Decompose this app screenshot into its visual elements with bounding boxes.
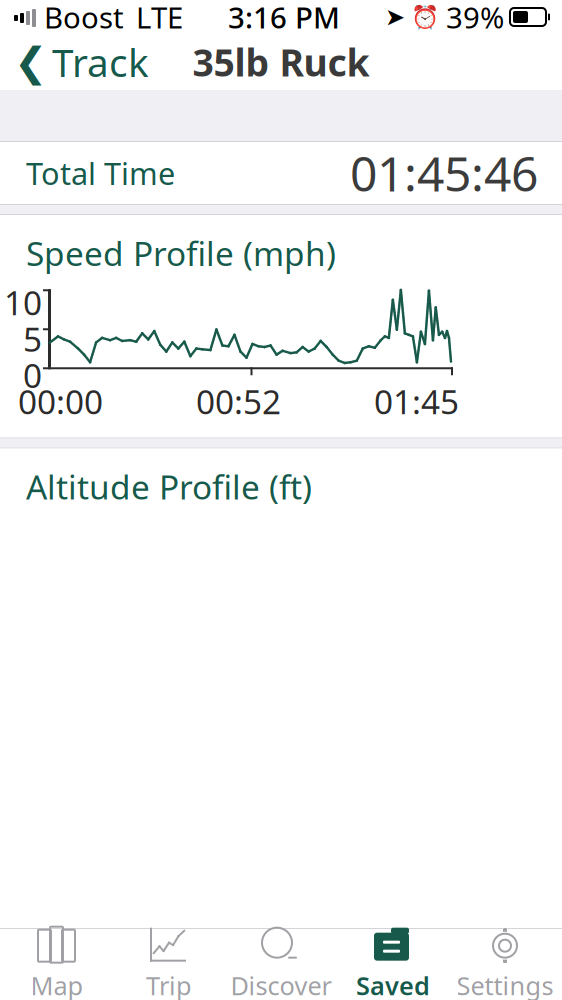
button[interactable]: Saved — [337, 928, 449, 1000]
button[interactable]: Settings — [449, 928, 561, 1000]
staticText: ⏰ — [411, 4, 439, 30]
staticText: Saved — [356, 969, 430, 1000]
staticText: Total Time — [26, 153, 175, 193]
staticText: ➤ — [385, 3, 405, 31]
staticText: 00:00 — [18, 379, 103, 424]
staticText: 01:45 — [374, 379, 459, 424]
staticText: 39% — [446, 0, 504, 36]
staticText: LTE — [136, 0, 183, 36]
staticText: 00:52 — [196, 379, 281, 424]
staticText: ❮ — [14, 39, 48, 85]
staticText: 01:45:46 — [350, 141, 538, 205]
staticText: 4.54 mi — [375, 915, 538, 978]
staticText: Trip — [146, 969, 192, 1000]
staticText: 0 — [23, 353, 42, 397]
button[interactable]: Distance — [0, 916, 562, 978]
button[interactable]: Ascent — [0, 978, 562, 1000]
staticText: Ascent — [26, 989, 123, 1000]
staticText: Discover — [230, 969, 331, 1000]
staticText: 3:16 PM — [228, 0, 340, 36]
staticText: Altitude Profile (ft) — [26, 464, 312, 509]
staticText: Settings — [456, 969, 553, 1000]
staticText: Map — [30, 969, 83, 1000]
staticText: 5 — [23, 317, 42, 361]
staticText: 745 ft (-726) — [275, 978, 538, 1000]
staticText: Speed Profile (mph) — [26, 231, 336, 275]
button[interactable]: Discover — [225, 928, 337, 1000]
button[interactable]: Total Time — [0, 142, 562, 204]
staticText: 10 — [4, 280, 42, 325]
staticText: Distance — [26, 926, 150, 967]
staticText: Boost — [44, 0, 124, 36]
button[interactable]: Map — [1, 928, 113, 1000]
button[interactable]: Trip — [113, 928, 225, 1000]
staticText: Track — [52, 36, 149, 88]
button[interactable]: ❮ — [0, 35, 159, 89]
staticText: 35lb Ruck — [192, 37, 369, 87]
